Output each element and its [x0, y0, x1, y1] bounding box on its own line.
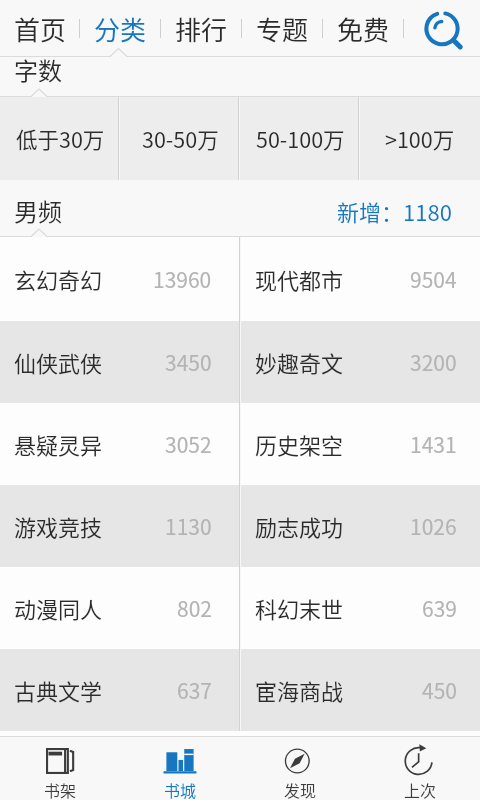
staticText: 3200: [410, 347, 457, 377]
staticText: 637: [177, 675, 212, 705]
button[interactable]: Search: [404, 0, 480, 57]
staticText: 上次: [404, 778, 437, 800]
staticText: 励志成功: [255, 510, 344, 542]
staticText: 男频: [14, 193, 62, 228]
button[interactable]: 发现: [240, 737, 360, 800]
staticText: >100万: [385, 123, 455, 154]
staticText: 宦海商战: [255, 674, 344, 706]
staticText: 历史架空: [255, 428, 344, 460]
staticText: 悬疑灵异: [14, 428, 103, 460]
button[interactable]: 排行: [161, 0, 242, 57]
button[interactable]: 玄幻奇幻: [0, 237, 239, 321]
button[interactable]: 上次: [360, 737, 480, 800]
button[interactable]: 科幻末世: [241, 567, 480, 649]
staticText: 9504: [410, 264, 457, 294]
staticText: 802: [177, 593, 212, 623]
button[interactable]: >100万: [360, 97, 480, 180]
staticText: 新增：1180: [337, 195, 452, 227]
staticText: 分类: [94, 10, 147, 48]
button[interactable]: 宦海商战: [241, 649, 480, 731]
staticText: 3052: [165, 429, 212, 459]
staticText: 639: [422, 593, 457, 623]
button[interactable]: 历史架空: [241, 403, 480, 485]
button[interactable]: 励志成功: [241, 485, 480, 567]
staticText: 发现: [284, 778, 317, 800]
button[interactable]: 现代都市: [241, 237, 480, 321]
button[interactable]: 低于30万: [0, 97, 120, 180]
button[interactable]: 30-50万: [120, 97, 240, 180]
staticText: 游戏竞技: [14, 510, 103, 542]
button[interactable]: 游戏竞技: [0, 485, 239, 567]
staticText: 450: [422, 675, 457, 705]
staticText: 妙趣奇文: [255, 346, 344, 378]
staticText: 现代都市: [255, 263, 344, 295]
button[interactable]: 古典文学: [0, 649, 239, 731]
button[interactable]: 首页: [0, 0, 80, 57]
button[interactable]: 专题: [242, 0, 323, 57]
staticText: 书城: [164, 778, 197, 800]
staticText: 动漫同人: [14, 592, 103, 624]
staticText: 1130: [165, 511, 212, 541]
staticText: 低于30万: [16, 123, 105, 154]
button[interactable]: 悬疑灵异: [0, 403, 239, 485]
button[interactable]: 分类: [80, 0, 161, 57]
button[interactable]: 50-100万: [240, 97, 360, 180]
staticText: 1431: [410, 429, 457, 459]
staticText: 科幻末世: [255, 592, 344, 624]
staticText: 免费: [337, 10, 390, 48]
staticText: 50-100万: [256, 123, 345, 154]
staticText: 仙侠武侠: [14, 346, 103, 378]
button[interactable]: 书城: [120, 737, 240, 800]
button[interactable]: 仙侠武侠: [0, 321, 239, 403]
button[interactable]: 妙趣奇文: [241, 321, 480, 403]
staticText: 古典文学: [14, 674, 103, 706]
button[interactable]: 书架: [0, 737, 120, 800]
button[interactable]: 免费: [323, 0, 404, 57]
staticText: 字数: [14, 52, 62, 87]
staticText: 书架: [44, 778, 77, 800]
staticText: 30-50万: [142, 123, 219, 154]
staticText: 1026: [410, 511, 457, 541]
staticText: 专题: [256, 10, 309, 48]
staticText: 玄幻奇幻: [14, 263, 103, 295]
staticText: 13960: [153, 264, 212, 294]
staticText: 3450: [165, 347, 212, 377]
button[interactable]: 动漫同人: [0, 567, 239, 649]
staticText: 首页: [14, 10, 67, 48]
staticText: 排行: [175, 10, 228, 48]
